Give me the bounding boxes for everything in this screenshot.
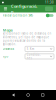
staticText: Validar cuenta con SMS: [2, 14, 32, 17]
button[interactable]: Back: [12, 93, 15, 97]
button[interactable]: Home: [27, 94, 29, 96]
staticText: Selecciona el radio de distancia, en kil…: [2, 32, 51, 46]
button[interactable]: Recent apps: [41, 94, 44, 96]
button[interactable]: Menu: [0, 5, 11, 12]
staticText: Mapa: [2, 27, 12, 33]
staticText: Distancia: [2, 47, 13, 51]
staticText: Tipo: [2, 55, 8, 58]
staticText: 5 Km: [27, 47, 34, 51]
button[interactable]: Validar cuenta con SMS: [0, 12, 56, 18]
staticText: 11:30: [45, 1, 54, 4]
staticText: Condiciones: [27, 53, 41, 60]
button[interactable]: 5 Km: [25, 46, 54, 51]
button[interactable]: Condiciones: [25, 54, 54, 59]
button[interactable]: Profile: [45, 6, 53, 11]
staticText: Configuración: [11, 3, 37, 14]
